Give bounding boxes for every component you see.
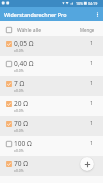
staticText: 1 (90, 100, 93, 107)
staticText: 0,05 Ω (14, 39, 34, 48)
staticText: ±0.0% (14, 48, 24, 53)
button[interactable]: 7 Ω (0, 76, 103, 96)
staticText: ±0.0% (14, 108, 24, 113)
staticText: 1 (90, 40, 93, 47)
staticText: 70 Ω (14, 159, 28, 168)
button[interactable]: 20 Ω (0, 96, 103, 116)
button[interactable]: 70 Ω (0, 156, 103, 176)
staticText: Widerstandsrechner Pro (4, 11, 67, 18)
button[interactable]: 0,05 Ω (0, 36, 103, 56)
button[interactable]: More options (92, 7, 103, 21)
staticText: 1 (90, 80, 93, 87)
staticText: 20 Ω (14, 99, 28, 108)
staticText: 04:19 (88, 1, 98, 6)
staticText: Wähle alle (17, 27, 42, 34)
button[interactable]: 0,40 Ω (0, 56, 103, 76)
staticText: ±0.0% (14, 88, 24, 93)
staticText: 1 (90, 160, 93, 167)
staticText: 70 Ω (14, 119, 28, 128)
staticText: 1 (90, 140, 93, 147)
staticText: 0,40 Ω (14, 59, 34, 68)
staticText: 1 (90, 60, 93, 67)
staticText: Menge (80, 27, 95, 33)
staticText: 10 (76, 1, 81, 6)
button[interactable]: Add resistor (80, 157, 94, 171)
button[interactable]: 100 Ω (0, 136, 103, 156)
staticText: ±0.0% (14, 68, 24, 73)
staticText: 100 Ω (14, 139, 32, 148)
staticText: 7 Ω (14, 79, 25, 88)
staticText: 1 (90, 120, 93, 127)
staticText: % (80, 1, 83, 6)
staticText: ±0.0% (14, 148, 24, 153)
staticText: ±0.0% (14, 128, 24, 133)
staticText: ±0.0% (14, 168, 24, 173)
button[interactable]: 70 Ω (0, 116, 103, 136)
